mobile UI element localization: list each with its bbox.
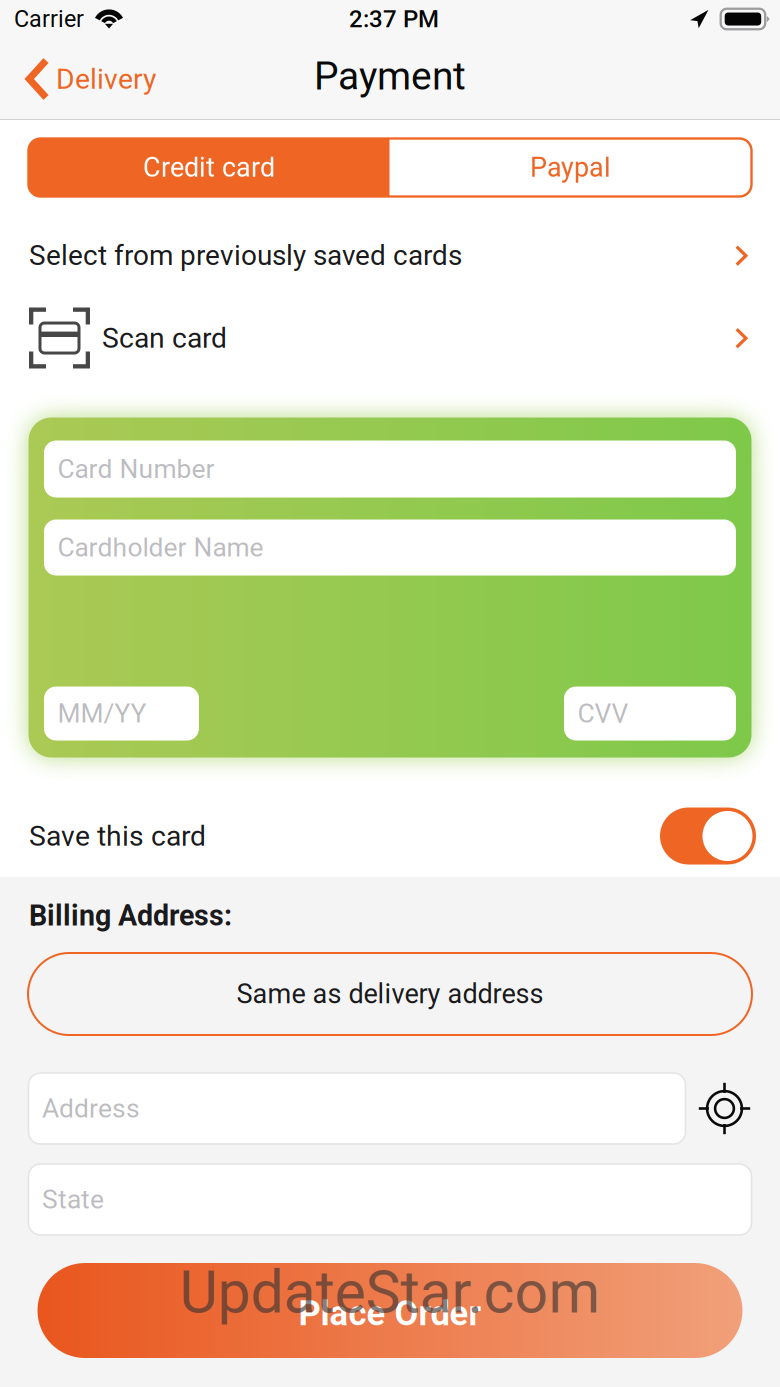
button[interactable]: Same as delivery address xyxy=(28,953,752,1035)
button[interactable]: Use current location xyxy=(697,1081,751,1135)
staticText: Select from previously saved cards xyxy=(29,239,462,272)
button[interactable]: Select from previously saved cards xyxy=(0,214,780,296)
staticText: Delivery xyxy=(56,62,156,96)
staticText: CVV xyxy=(577,698,628,729)
staticText: UpdateStar.com xyxy=(179,1258,600,1327)
staticText: Place Order xyxy=(298,1293,481,1333)
button[interactable]: Paypal xyxy=(389,138,751,196)
staticText: Carrier xyxy=(14,5,84,33)
button[interactable]: Save this card xyxy=(660,807,756,864)
staticText: Address xyxy=(42,1093,140,1124)
staticText: Same as delivery address xyxy=(236,978,543,1010)
staticText: 2:37 PM xyxy=(349,5,439,33)
button[interactable]: Scan card xyxy=(0,296,780,379)
button[interactable]: Delivery xyxy=(0,38,172,120)
staticText: MM/YY xyxy=(57,698,146,729)
button[interactable]: Place Order xyxy=(37,1263,742,1358)
staticText: State xyxy=(42,1184,104,1215)
staticText: Payment xyxy=(314,53,466,99)
staticText: Scan card xyxy=(102,321,227,355)
staticText: Billing Address: xyxy=(29,899,232,932)
staticText: Save this card xyxy=(29,819,206,853)
staticText: Paypal xyxy=(530,152,611,183)
button[interactable]: Credit card xyxy=(28,138,389,196)
staticText: Cardholder Name xyxy=(57,532,263,563)
staticText: Card Number xyxy=(57,453,214,484)
staticText: Credit card xyxy=(143,152,275,183)
